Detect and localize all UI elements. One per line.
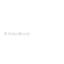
staticText: Hello World [8,31,29,36]
